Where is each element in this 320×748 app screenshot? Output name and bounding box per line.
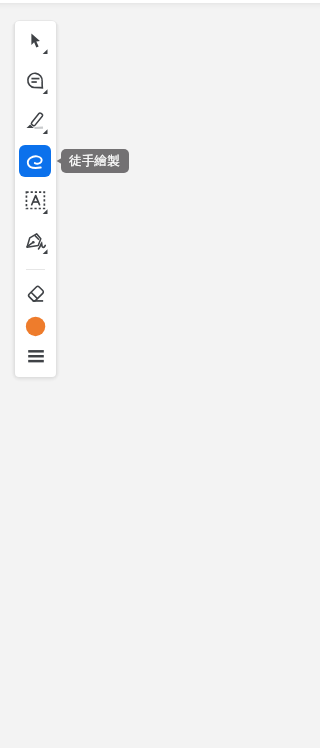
button[interactable]: Eraser: [15, 274, 56, 314]
staticText: 徒手繪製: [69, 153, 121, 169]
button[interactable]: Comment: [15, 61, 56, 101]
button[interactable]: More options: [15, 336, 56, 376]
button[interactable]: Select tool: [15, 21, 56, 61]
button[interactable]: Freehand draw: [19, 145, 51, 177]
button[interactable]: Colour: [15, 306, 56, 346]
button[interactable]: Highlighter: [15, 101, 56, 141]
button[interactable]: Text box: [15, 181, 56, 221]
button[interactable]: Pen: [15, 221, 56, 261]
